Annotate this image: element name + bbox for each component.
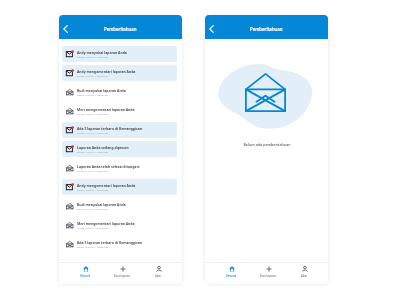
button[interactable]: Budi menyukai laporan Anda (62, 198, 177, 214)
staticText: Akun (155, 274, 162, 277)
button[interactable]: Buat Laporan (111, 263, 134, 278)
staticText: Laporan Anda telah selesai ditangani (77, 164, 140, 169)
button[interactable]: Akun (298, 263, 311, 278)
button[interactable]: Buat Laporan (257, 263, 280, 278)
staticText: Laporan Anda sedang diproses (77, 145, 129, 150)
button[interactable]: Laporan Anda sedang diproses (62, 141, 177, 157)
staticText: Selasa, 12/01/21 | 09:30 WIB (77, 227, 108, 230)
staticText: Selasa, 12/01/21 | 09:30 WIB (77, 151, 108, 154)
staticText: Selasa, 12/01/21 | 09:30 WIB (77, 170, 108, 173)
staticText: Pemberitahuan (104, 26, 137, 32)
staticText: Selasa, 12/01/21 | 09:30 WIB (77, 208, 108, 211)
staticText: Meri mengomentari laporan Anda (77, 107, 135, 112)
staticText: Pemberitahuan (250, 26, 283, 32)
button[interactable]: Back (205, 21, 217, 33)
staticText: Selasa, 12/01/21 | 09:30 WIB (77, 132, 108, 135)
staticText: Selasa, 12/01/21 | 09:30 WIB (77, 94, 108, 97)
button[interactable]: Meri mengomentari laporan Anda (62, 103, 177, 119)
button[interactable]: Andy mengomentari laporan Anda (62, 179, 177, 195)
staticText: Selasa, 12/01/21 | 09:30 WIB (77, 113, 108, 116)
staticText: Buat Laporan (114, 274, 131, 277)
button[interactable]: Akun (152, 263, 165, 278)
button[interactable]: Back (59, 21, 71, 33)
staticText: Andy mengomentari laporan Anda (77, 69, 136, 74)
staticText: Ada 5 laporan terbaru di Kemanggisan (77, 240, 142, 245)
staticText: Selasa, 12/01/21 | 09:30 WIB (77, 189, 108, 192)
staticText: Andy mengomentari laporan Anda (77, 183, 136, 188)
button[interactable]: Ada 5 laporan terbaru di Kemanggisan (62, 236, 177, 252)
button[interactable]: Meri mengomentari laporan Anda (62, 217, 177, 233)
staticText: Buat Laporan (260, 274, 277, 277)
staticText: Budi menyukai laporan Anda (77, 88, 126, 93)
button[interactable]: Ada 5 laporan terbaru di Kemanggisan (62, 122, 177, 138)
staticText: Akun (301, 274, 308, 277)
staticText: Selasa, 12/01/21 | 09:30 WIB (77, 246, 108, 249)
button[interactable]: Beranda (223, 263, 240, 278)
button[interactable]: Beranda (77, 263, 94, 278)
staticText: Meri mengomentari laporan Anda (77, 221, 135, 226)
staticText: Budi menyukai laporan Anda (77, 202, 126, 207)
staticText: Selasa, 12/01/21 | 09:30 WIB (77, 56, 108, 59)
staticText: Beranda (226, 274, 237, 277)
staticText: Ada 5 laporan terbaru di Kemanggisan (77, 126, 142, 131)
button[interactable]: Andy mengomentari laporan Anda (62, 65, 177, 81)
button[interactable]: Budi menyukai laporan Anda (62, 84, 177, 100)
staticText: Andy menyukai laporan Anda (77, 50, 127, 55)
staticText: Selasa, 12/01/21 | 09:30 WIB (77, 75, 108, 78)
button[interactable]: Andy menyukai laporan Anda (62, 46, 177, 62)
staticText: Beranda (80, 274, 91, 277)
staticText: Belum ada pemberitahuan (243, 142, 291, 147)
button[interactable]: Laporan Anda telah selesai ditangani (62, 160, 177, 176)
